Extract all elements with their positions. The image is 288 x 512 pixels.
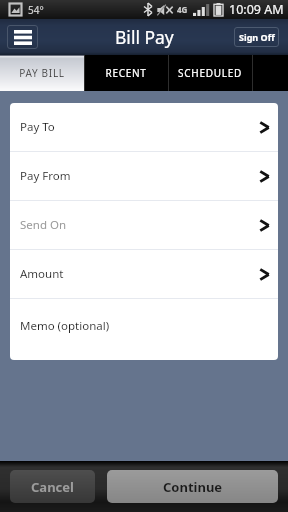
button[interactable]: Pay To: [10, 103, 278, 151]
button[interactable]: PAY BILL: [0, 55, 84, 91]
staticText: 4G: [177, 4, 188, 15]
button[interactable]: Memo (optional): [10, 299, 278, 360]
staticText: RECENT: [105, 66, 147, 80]
staticText: Memo (optional): [20, 318, 110, 334]
staticText: Bill Pay: [115, 25, 174, 49]
staticText: Send On: [20, 217, 67, 233]
button[interactable]: Open navigation menu: [7, 25, 38, 49]
button[interactable]: Sign Off: [234, 27, 279, 47]
button[interactable]: Continue: [107, 470, 278, 503]
staticText: Pay From: [20, 168, 71, 184]
button[interactable]: Pay From: [10, 152, 278, 200]
staticText: PAY BILL: [19, 66, 65, 80]
button[interactable]: Cancel: [10, 470, 95, 503]
button[interactable]: SCHEDULED: [168, 55, 252, 91]
button[interactable]: Amount: [10, 250, 278, 298]
staticText: Continue: [163, 478, 223, 496]
button[interactable]: RECENT: [84, 55, 168, 91]
staticText: Pay To: [20, 119, 55, 135]
button[interactable]: Send On: [10, 201, 278, 249]
staticText: 54°: [28, 3, 44, 17]
button[interactable]: [252, 55, 288, 91]
staticText: SCHEDULED: [178, 66, 242, 80]
staticText: Amount: [20, 266, 64, 282]
staticText: Sign Off: [239, 31, 275, 43]
staticText: Cancel: [31, 478, 74, 496]
staticText: 10:09 AM: [229, 1, 284, 18]
